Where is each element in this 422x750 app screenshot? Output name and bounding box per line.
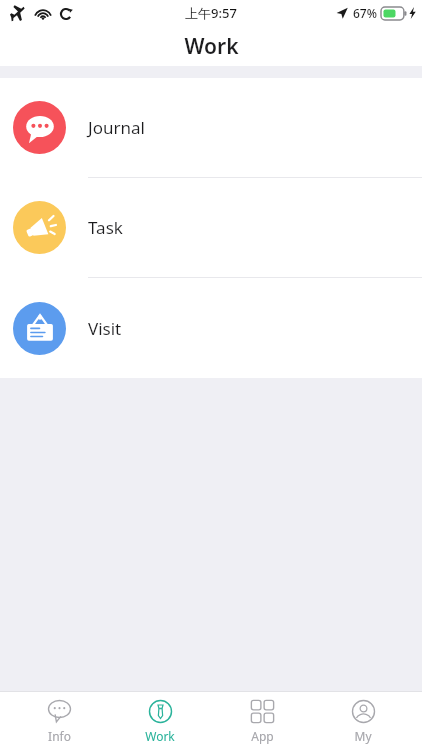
- button[interactable]: Journal: [0, 78, 422, 178]
- staticText: Visit: [88, 317, 122, 340]
- staticText: Work: [145, 728, 175, 744]
- staticText: 上午9:57: [185, 4, 237, 22]
- staticText: Journal: [88, 116, 145, 139]
- staticText: 67%: [353, 5, 377, 21]
- button[interactable]: Work: [117, 695, 203, 748]
- button[interactable]: Info: [16, 695, 102, 748]
- staticText: My: [354, 728, 372, 744]
- button[interactable]: Visit: [0, 278, 422, 378]
- button[interactable]: App: [219, 695, 305, 748]
- staticText: App: [251, 728, 274, 744]
- button[interactable]: Task: [0, 178, 422, 278]
- staticText: Info: [48, 728, 71, 744]
- staticText: Task: [88, 216, 123, 239]
- staticText: Work: [184, 32, 239, 61]
- button[interactable]: My: [320, 695, 406, 748]
